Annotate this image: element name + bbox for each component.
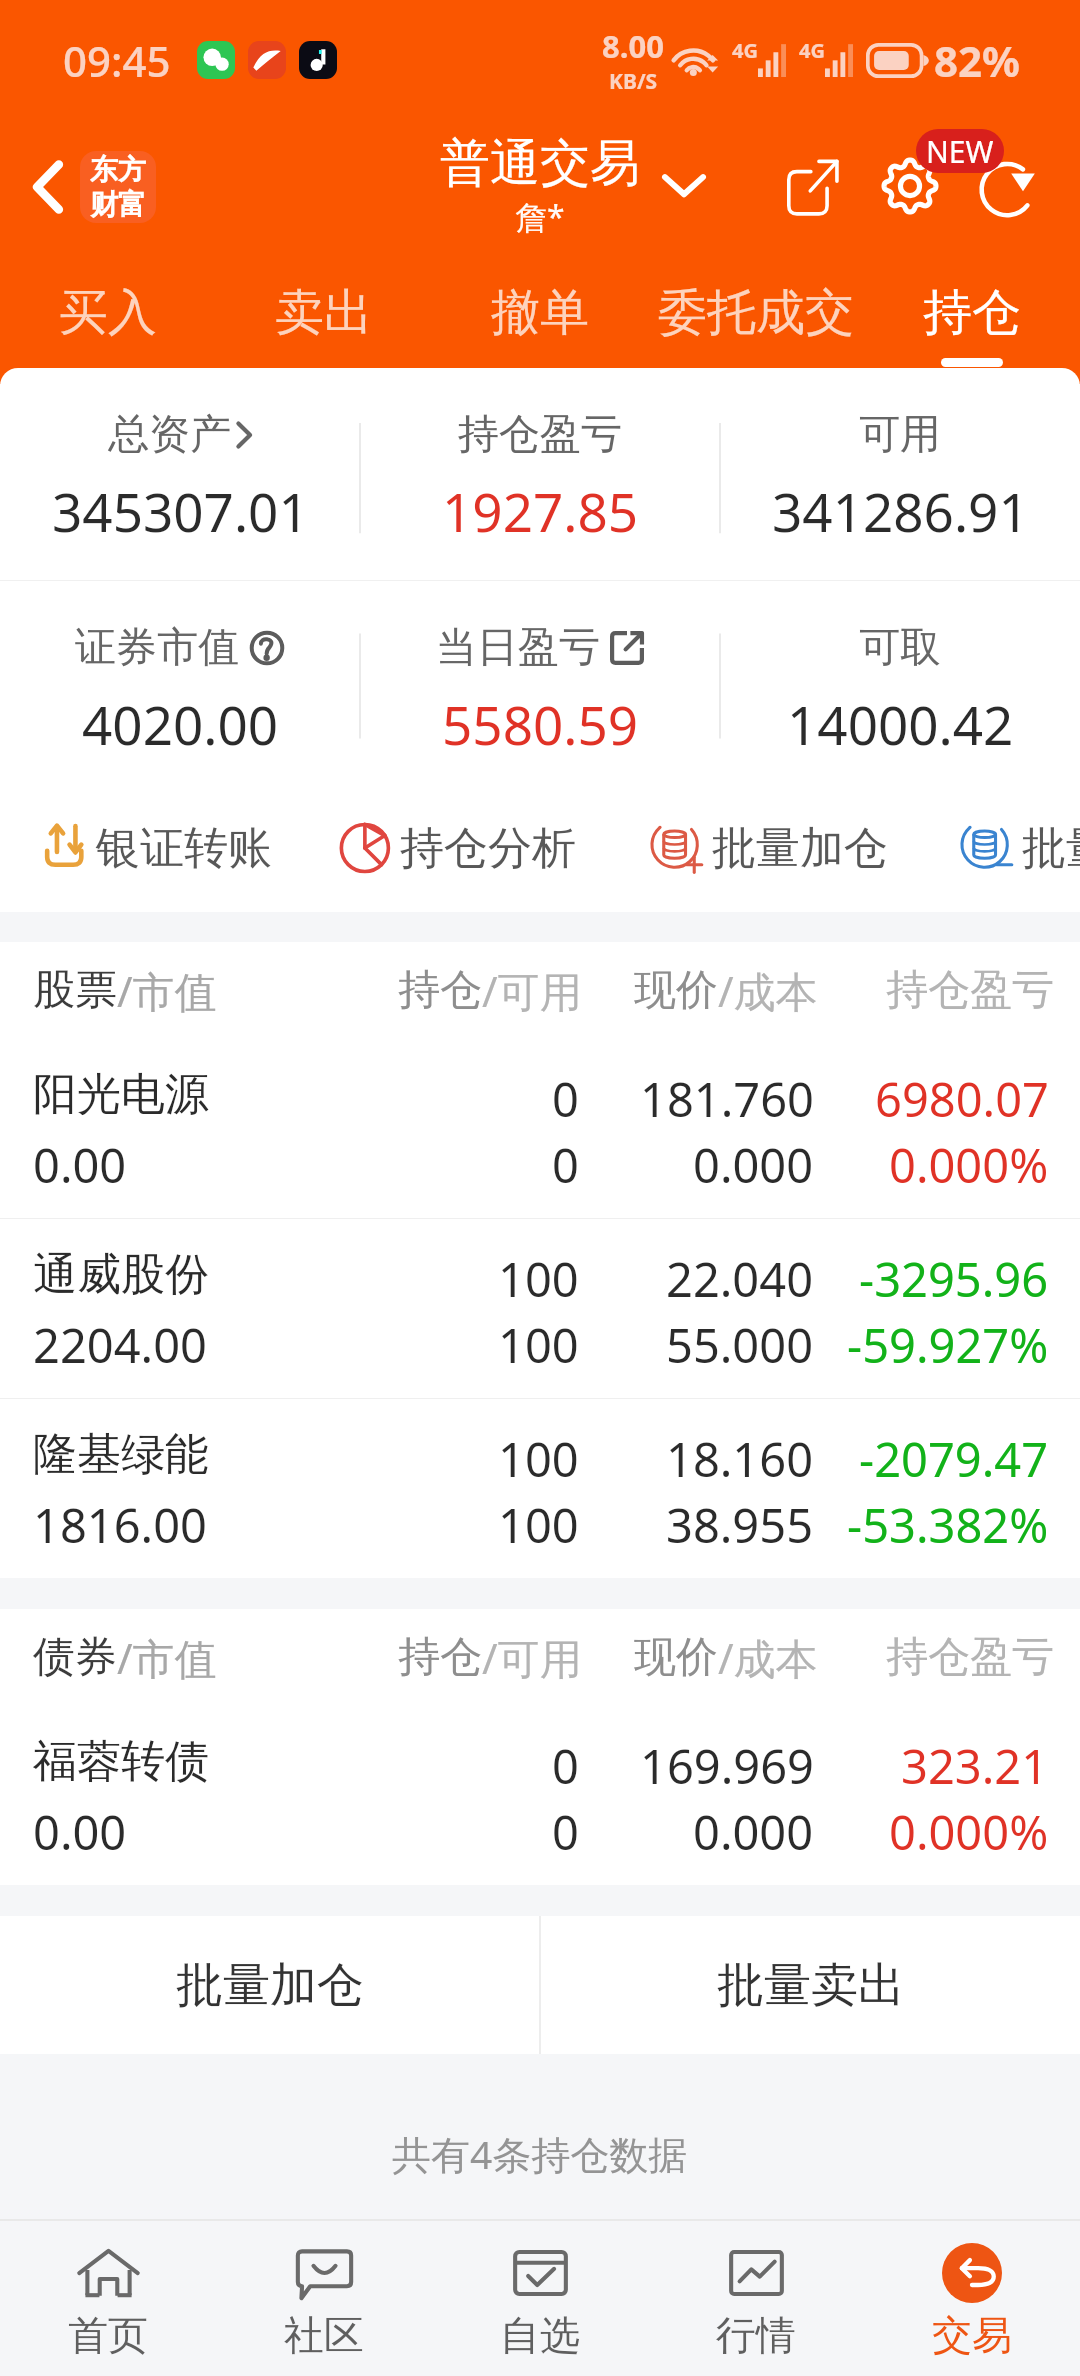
staticText: /市值 (117, 962, 217, 1019)
staticText: 股票 (33, 964, 117, 1017)
button[interactable]: 证券市值 (0, 581, 360, 783)
staticText: 100 (498, 1493, 579, 1545)
staticText: 自选 (500, 2310, 580, 2360)
staticText: 0.000% (889, 1800, 1049, 1852)
staticText: -2079.47 (859, 1427, 1049, 1479)
button[interactable]: 持仓盈亏 (360, 368, 720, 580)
staticText: 1816.00 (33, 1493, 207, 1545)
button[interactable]: 普通交易 (440, 132, 640, 239)
staticText: 341286.91 (772, 475, 1029, 547)
staticText: /成本 (718, 1629, 818, 1686)
staticText: 批量卖出 (717, 1956, 905, 2015)
staticText: 买入 (59, 282, 157, 344)
staticText: 323.21 (901, 1734, 1049, 1786)
staticText: 持仓 (398, 964, 482, 1017)
staticText: 首页 (68, 2310, 148, 2360)
staticText: 批量 (1022, 821, 1080, 876)
staticText: 持仓盈亏 (458, 409, 622, 461)
button[interactable]: 批量加仓 (0, 1916, 539, 2054)
staticText: 0 (552, 1800, 579, 1852)
staticText: 22.040 (666, 1247, 814, 1299)
button[interactable]: 东方 (80, 151, 156, 223)
button[interactable]: 隆基绿能 (0, 1399, 1080, 1578)
staticText: /成本 (718, 962, 818, 1019)
staticText: 100 (498, 1247, 579, 1299)
button[interactable]: 通威股份 (0, 1219, 1080, 1398)
button[interactable]: 阳光电源 (0, 1039, 1080, 1218)
button[interactable]: 银证转账 (34, 820, 272, 876)
button[interactable]: 当日盈亏 (360, 581, 720, 783)
staticText: 证券市值 (75, 622, 239, 674)
staticText: 82% (934, 32, 1020, 89)
staticText: 通威股份 (33, 1247, 209, 1299)
staticText: 18.160 (666, 1427, 814, 1479)
button[interactable]: 自选 (432, 2221, 648, 2376)
staticText: 银证转账 (96, 821, 272, 876)
button[interactable]: 批量 (960, 820, 1080, 876)
staticText: 撤单 (491, 282, 589, 344)
staticText: 4020.00 (82, 688, 279, 760)
staticText: 0 (552, 1067, 579, 1119)
button[interactable]: 设置 (872, 148, 948, 224)
button[interactable]: 持仓 (864, 268, 1080, 384)
staticText: /市值 (117, 1629, 217, 1686)
staticText: 持仓 (923, 282, 1021, 344)
staticText: 181.760 (640, 1067, 814, 1119)
staticText: 0 (552, 1133, 579, 1185)
staticText: 09:45 (63, 32, 171, 89)
staticText: 100 (498, 1427, 579, 1479)
staticText: 批量加仓 (176, 1956, 364, 2015)
button[interactable]: 持仓分析 (338, 820, 576, 876)
staticText: 169.969 (640, 1734, 814, 1786)
button[interactable]: 返回 (10, 149, 86, 225)
staticText: -59.927% (847, 1313, 1049, 1365)
staticText: 0.000 (693, 1800, 814, 1852)
staticText: 持仓盈亏 (886, 1631, 1054, 1684)
staticText: 东方 (90, 152, 146, 187)
staticText: 38.955 (666, 1493, 814, 1545)
staticText: 交易 (932, 2310, 1012, 2360)
staticText: NEW (926, 131, 994, 172)
staticText: /可用 (482, 1629, 582, 1686)
staticText: 0.00 (33, 1800, 127, 1852)
staticText: 0 (552, 1734, 579, 1786)
button[interactable]: 首页 (0, 2221, 216, 2376)
staticText: 6980.07 (875, 1067, 1049, 1119)
staticText: 可取 (859, 622, 941, 674)
button[interactable]: 委托成交 (648, 268, 864, 384)
staticText: 行情 (716, 2310, 796, 2360)
button[interactable]: 可取 (720, 581, 1080, 783)
button[interactable]: 分享 (774, 149, 850, 225)
staticText: 批量加仓 (712, 821, 888, 876)
button[interactable]: 行情 (648, 2221, 864, 2376)
staticText: 卖出 (275, 282, 373, 344)
staticText: 345307.01 (52, 475, 309, 547)
staticText: 总资产 (108, 409, 231, 461)
staticText: 55.000 (666, 1313, 814, 1365)
staticText: 0.00 (33, 1133, 127, 1185)
staticText: 共有4条持仓数据 (392, 2127, 688, 2180)
staticText: 8.00 (602, 25, 664, 67)
staticText: 5580.59 (442, 688, 639, 760)
staticText: 4G (799, 37, 825, 64)
button[interactable]: 批量加仓 (650, 820, 888, 876)
button[interactable]: 卖出 (216, 268, 432, 384)
button[interactable]: 总资产 (0, 368, 360, 580)
staticText: 0.000% (889, 1133, 1049, 1185)
button[interactable]: 撤单 (432, 268, 648, 384)
button[interactable]: 福蓉转债 (0, 1706, 1080, 1885)
staticText: 2204.00 (33, 1313, 207, 1365)
button[interactable]: 批量卖出 (541, 1916, 1080, 2054)
staticText: 4G (732, 37, 758, 64)
staticText: 现价 (634, 1631, 718, 1684)
staticText: 持仓 (398, 1631, 482, 1684)
button[interactable]: 买入 (0, 268, 216, 384)
button[interactable]: 刷新 (975, 149, 1051, 225)
button[interactable]: 社区 (216, 2221, 432, 2376)
staticText: 持仓盈亏 (886, 964, 1054, 1017)
button[interactable]: 交易 (864, 2221, 1080, 2376)
button[interactable]: 切换账户 (646, 147, 722, 223)
button[interactable]: 可用 (720, 368, 1080, 580)
staticText: KB/S (609, 67, 658, 96)
staticText: -3295.96 (859, 1247, 1049, 1299)
